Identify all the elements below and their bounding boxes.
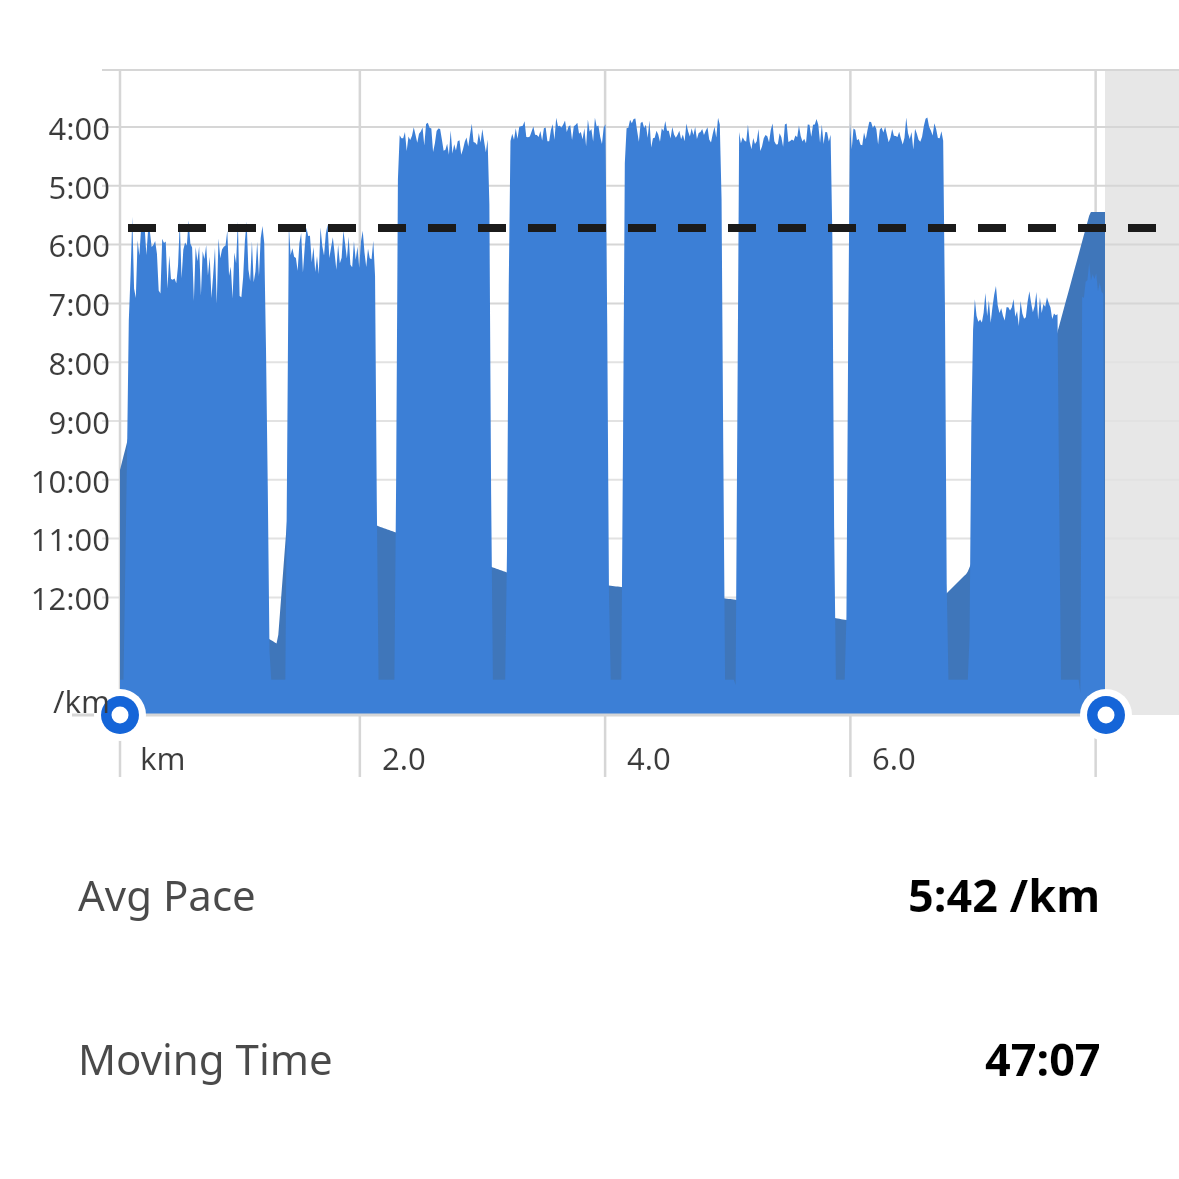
staticText: 4.0 [627,737,671,779]
staticText: Avg Pace [78,866,256,923]
staticText: 2.0 [382,737,426,779]
staticText: 5:00 [48,166,110,208]
button[interactable]: Moving Time [0,1010,1179,1106]
staticText: 11:00 [30,518,110,560]
staticText: km [140,737,186,779]
staticText: 5:42 /km [908,864,1101,925]
staticText: 8:00 [48,342,110,384]
staticText: 10:00 [30,460,110,502]
staticText: 6:00 [48,224,110,266]
staticText: 7:00 [48,283,110,325]
button[interactable]: Pace and elevation chart [0,0,1179,790]
button[interactable]: Avg Pace [0,846,1179,942]
staticText: 12:00 [30,577,110,619]
staticText: 9:00 [48,401,110,443]
staticText: 47:07 [985,1028,1101,1089]
staticText: Moving Time [78,1030,333,1087]
staticText: 6.0 [872,737,916,779]
staticText: 4:00 [48,107,110,149]
staticText: /km [52,680,110,722]
